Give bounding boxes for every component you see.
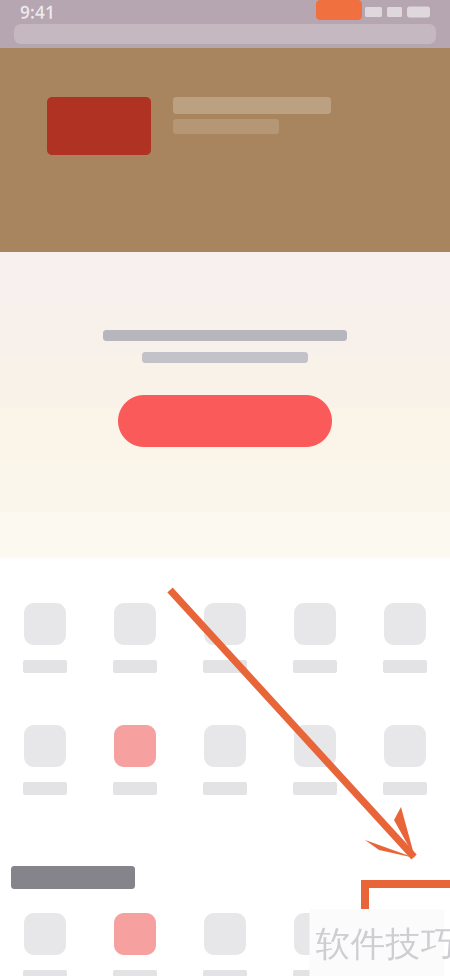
button[interactable]: Service — [360, 725, 450, 795]
button[interactable]: Service — [0, 603, 90, 673]
button[interactable]: Service — [180, 725, 270, 795]
button[interactable]: Service — [0, 913, 90, 976]
button[interactable]: Primary action — [118, 395, 332, 447]
button[interactable]: Service — [90, 603, 180, 673]
button[interactable]: Service — [360, 603, 450, 673]
button[interactable]: Service — [90, 913, 180, 976]
button[interactable]: Service — [90, 725, 180, 795]
staticText: 9:41 — [20, 0, 55, 23]
button[interactable]: Service — [0, 725, 90, 795]
button[interactable]: Service — [180, 913, 270, 976]
button[interactable]: Service — [270, 913, 360, 976]
button[interactable]: Service — [180, 603, 270, 673]
button[interactable]: Service — [270, 603, 360, 673]
button[interactable]: Service — [270, 725, 360, 795]
staticText: 软件技巧 — [315, 923, 450, 966]
